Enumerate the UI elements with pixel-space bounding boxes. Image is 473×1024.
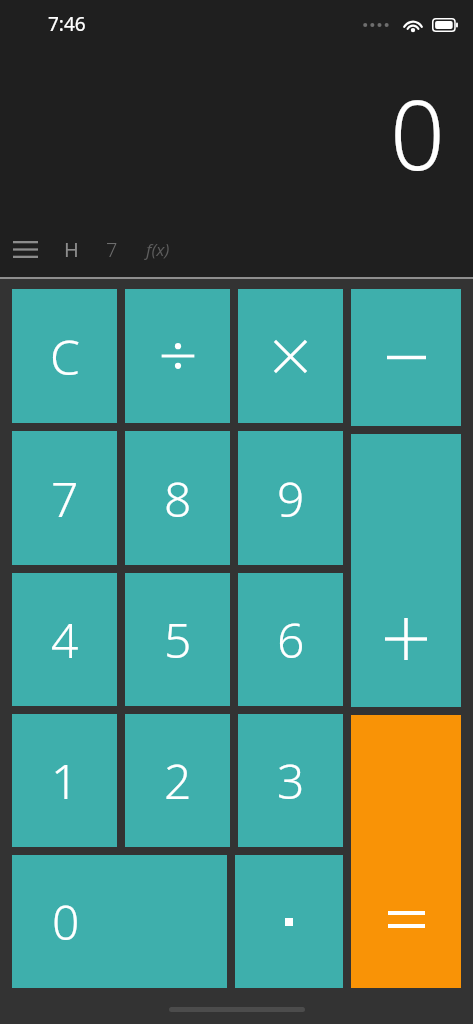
button[interactable]: Equals [351,715,461,988]
staticText: 8 [164,466,192,531]
staticText: C [50,324,80,389]
button[interactable]: Multiply [238,289,343,423]
staticText: 5 [164,607,192,672]
staticText: 0 [390,67,445,198]
button[interactable]: 4 [12,573,117,706]
button[interactable]: Add [351,434,461,707]
staticText: f(x) [146,238,170,261]
button[interactable]: H [50,221,92,277]
button[interactable]: 3 [238,714,343,847]
staticText: 6 [277,607,305,672]
button[interactable]: Decimal point [235,855,343,988]
button[interactable]: 5 [125,573,230,706]
button[interactable]: 1 [12,714,117,847]
staticText: 4 [51,607,79,672]
button[interactable]: 7 [92,221,132,277]
button[interactable]: Menu [0,221,50,277]
button[interactable]: 6 [238,573,343,706]
button[interactable]: Clear [12,289,117,423]
button[interactable]: 0 [12,855,227,988]
button[interactable]: 2 [125,714,230,847]
button[interactable]: 8 [125,431,230,565]
staticText: 1 [51,748,79,813]
staticText: 7:46 [48,11,86,37]
staticText: 7 [51,466,79,531]
staticText: 7 [106,236,118,263]
button[interactable]: Subtract [351,289,461,426]
staticText: 9 [277,466,305,531]
button[interactable]: Divide [125,289,230,423]
staticText: 0 [52,889,80,954]
button[interactable]: f(x) [132,221,184,277]
staticText: 3 [277,748,305,813]
button[interactable]: 9 [238,431,343,565]
staticText: 2 [164,748,192,813]
button[interactable]: 7 [12,431,117,565]
staticText: H [64,236,79,263]
